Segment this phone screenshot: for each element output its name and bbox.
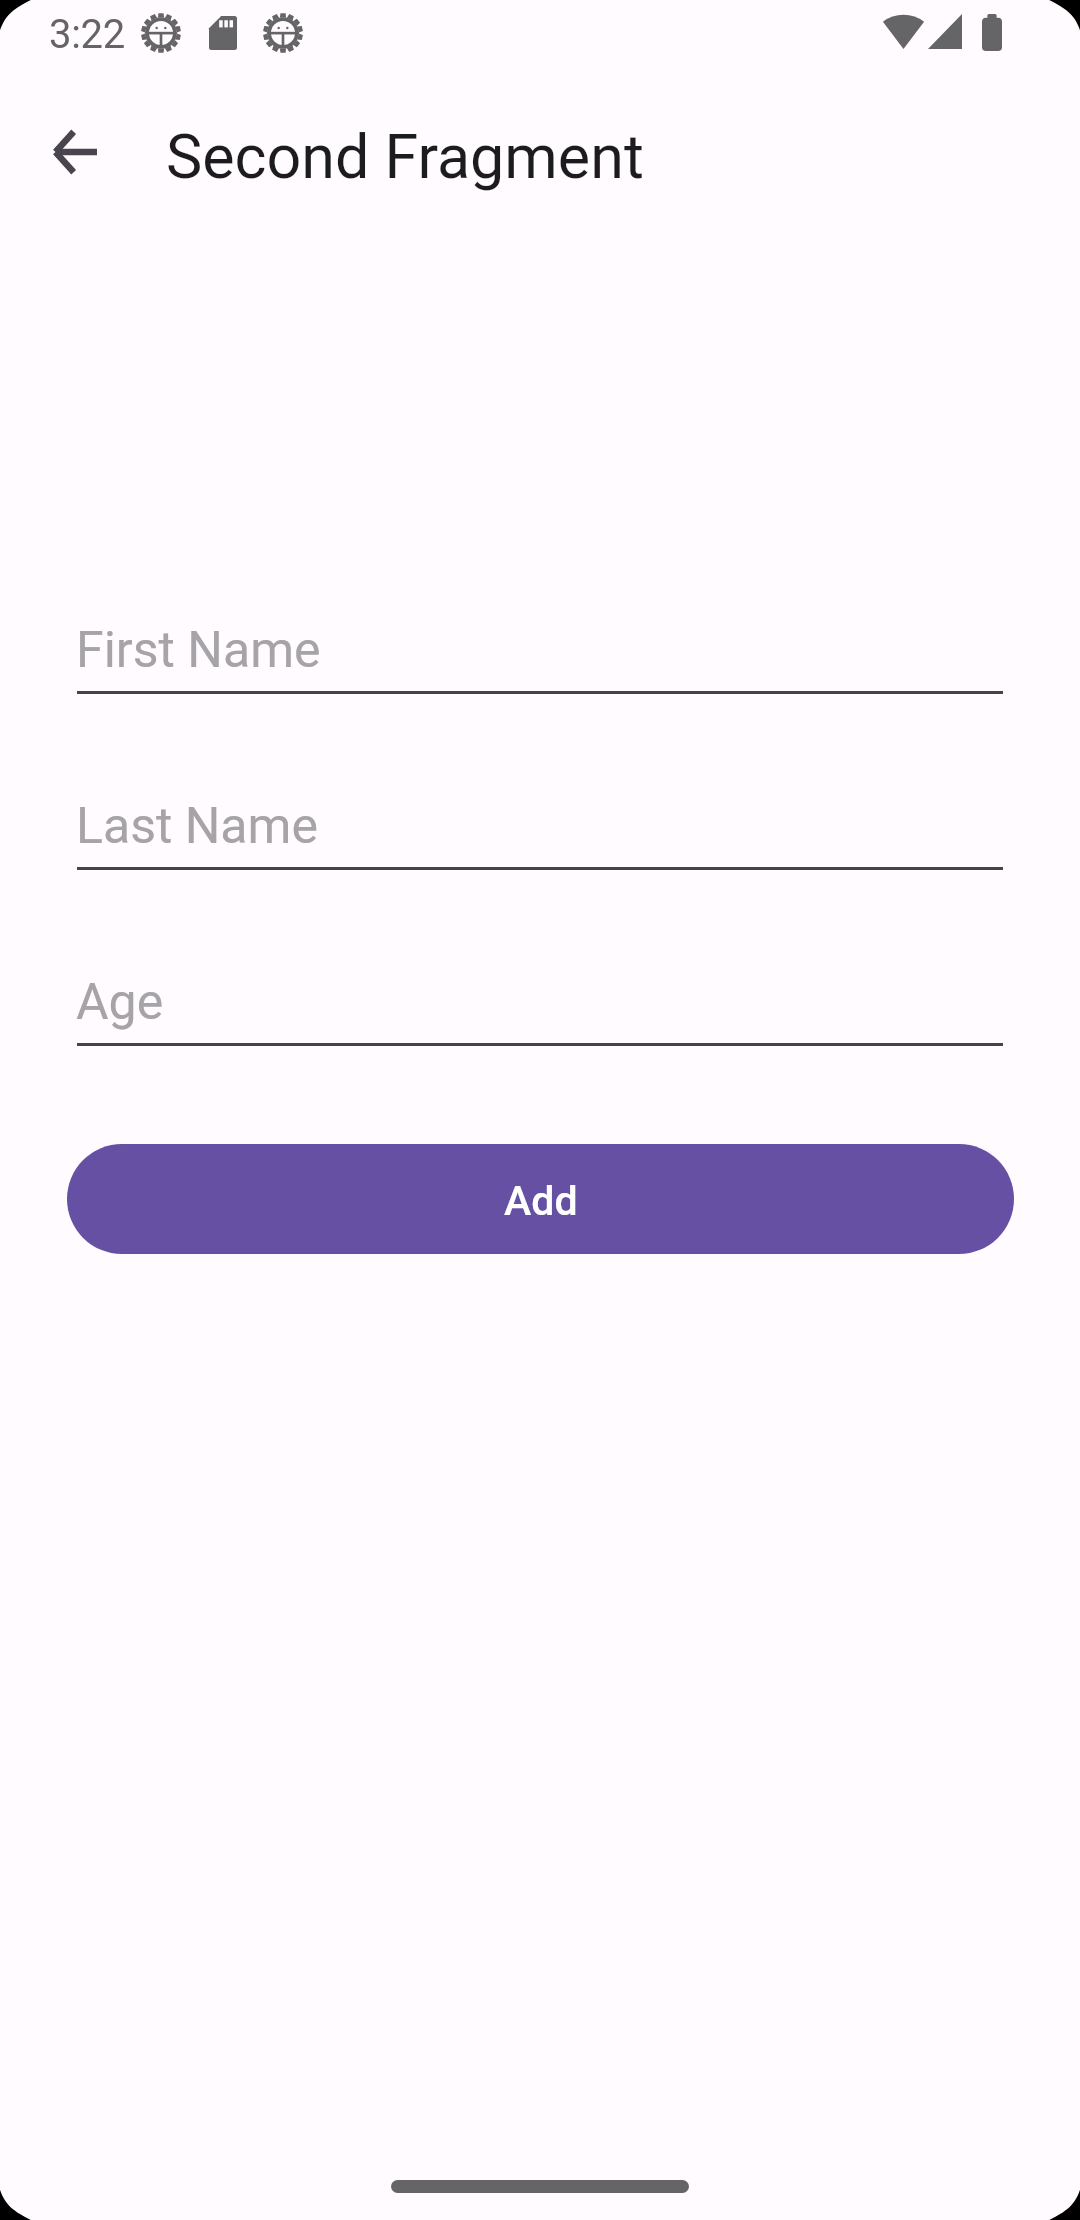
staticText: Last Name (76, 797, 318, 856)
staticText: Add (504, 1177, 578, 1225)
staticText: 3:22 (49, 11, 125, 58)
button[interactable]: First Name (77, 572, 1003, 694)
button[interactable]: Add (67, 1144, 1014, 1254)
button[interactable]: Navigate up (31, 108, 119, 196)
staticText: First Name (76, 621, 321, 680)
button[interactable]: Age (77, 924, 1003, 1046)
button[interactable]: Last Name (77, 748, 1003, 870)
staticText: Age (76, 973, 164, 1032)
staticText: Second Fragment (166, 121, 644, 192)
